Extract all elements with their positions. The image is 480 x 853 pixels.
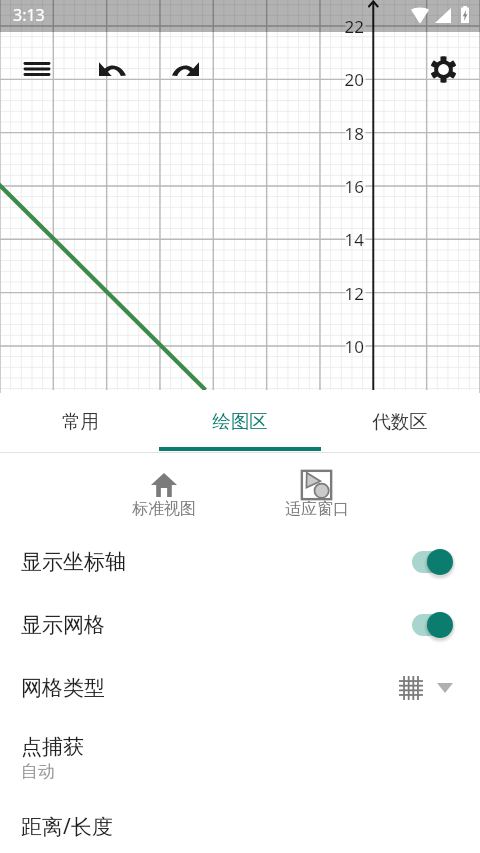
staticText: 16	[344, 175, 364, 197]
staticText: 代数区	[372, 410, 428, 433]
button[interactable]: 绘图区	[160, 392, 320, 450]
staticText: 常用	[62, 410, 99, 433]
button[interactable]: 显示网格	[0, 599, 480, 651]
button[interactable]: 标准视图	[87, 468, 240, 534]
button[interactable]: 代数区	[320, 392, 480, 450]
button[interactable]: Settings	[419, 45, 467, 93]
staticText: 自动	[21, 761, 55, 782]
staticText: 显示坐标轴	[21, 549, 126, 575]
staticText: 适应窗口	[285, 499, 349, 519]
button[interactable]: 适应窗口	[240, 468, 393, 534]
staticText: 绘图区	[212, 410, 268, 433]
staticText: 10	[344, 335, 364, 357]
staticText: 标准视图	[132, 499, 196, 519]
staticText: 14	[344, 228, 364, 250]
button[interactable]: 点捕获	[0, 724, 480, 795]
button[interactable]: Menu	[13, 45, 61, 93]
staticText: 20	[344, 68, 364, 90]
staticText: 网格类型	[21, 675, 105, 701]
staticText: 点捕获	[21, 734, 84, 760]
staticText: 22	[344, 15, 364, 37]
button[interactable]: 常用	[0, 392, 160, 450]
button[interactable]: 距离/长度	[0, 800, 480, 852]
staticText: 12	[344, 282, 364, 304]
staticText: 3:13	[13, 4, 45, 26]
button[interactable]: Undo	[88, 45, 136, 93]
staticText: 距离/长度	[21, 812, 113, 841]
button[interactable]: Redo	[161, 45, 209, 93]
staticText: 显示网格	[21, 612, 105, 638]
button[interactable]: 显示坐标轴	[0, 536, 480, 588]
staticText: 18	[344, 122, 364, 144]
button[interactable]: 网格类型	[0, 662, 480, 714]
